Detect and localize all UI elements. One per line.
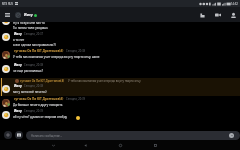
button[interactable]: Recent apps bbox=[150, 140, 160, 150]
button[interactable]: Open navigation menu bbox=[3, 10, 12, 19]
button[interactable]: Contact info bbox=[228, 10, 238, 20]
button[interactable]: Написать сообщение... bbox=[26, 131, 240, 140]
staticText: а то нет bbox=[13, 38, 25, 42]
staticText: Сегодня, 20:37 bbox=[24, 32, 44, 36]
staticText: че еще расскажешь? bbox=[13, 69, 44, 73]
staticText: сугчиан Ох Пи ЮТ Дрогтинов(#) bbox=[14, 97, 64, 101]
button[interactable]: Attach bbox=[4, 131, 12, 139]
staticText: Сегодня, 20:39 bbox=[66, 97, 86, 101]
button[interactable]: Hide keyboard bbox=[48, 140, 58, 150]
button[interactable]: Record voice message bbox=[229, 133, 234, 138]
staticText: а все сделал как правильно?) bbox=[13, 43, 56, 47]
staticText: как у меня всё нечего:) bbox=[13, 90, 47, 94]
staticText: Да больше нечего другу говорить bbox=[13, 103, 63, 107]
button[interactable]: Video call bbox=[213, 10, 223, 20]
button[interactable]: Call bbox=[197, 10, 207, 20]
staticText: 14:52 bbox=[231, 2, 238, 6]
staticText: Написать сообщение... bbox=[31, 134, 63, 138]
staticText: Иису bbox=[24, 12, 33, 17]
staticText: Ну я покуй мне как то bbox=[13, 21, 45, 25]
staticText: Сегодня, 20:38 bbox=[66, 49, 86, 53]
staticText: сугчиан Ох Пи ЮТ Дрогтинов(#) bbox=[20, 79, 65, 83]
staticText: Ты потом тоже уходишь bbox=[13, 26, 48, 30]
staticText: Сегодня, 20:38 bbox=[24, 63, 44, 67]
staticText: Иису bbox=[14, 63, 22, 67]
staticText: MTS RUS bbox=[2, 2, 13, 6]
staticText: сугчиан Ох Пи ЮТ Дрогтинов(#) bbox=[14, 49, 64, 53]
staticText: У тебя как компания учит опереда во рту … bbox=[68, 79, 141, 83]
button[interactable]: Stickers bbox=[15, 131, 23, 139]
staticText: Сегодня, 20:38 bbox=[24, 84, 44, 88]
button[interactable]: Back bbox=[80, 140, 90, 150]
staticText: Иису bbox=[14, 109, 22, 113]
staticText: Сегодня, 20:39 bbox=[24, 109, 44, 113]
staticText: Иису bbox=[14, 32, 22, 36]
staticText: У тебя как компания учит опереда во рту … bbox=[13, 55, 100, 59]
staticText: Иису bbox=[14, 84, 22, 88]
button[interactable]: Home bbox=[115, 140, 125, 150]
staticText: об ну чёто? думаю от зверков отобду bbox=[13, 115, 67, 119]
